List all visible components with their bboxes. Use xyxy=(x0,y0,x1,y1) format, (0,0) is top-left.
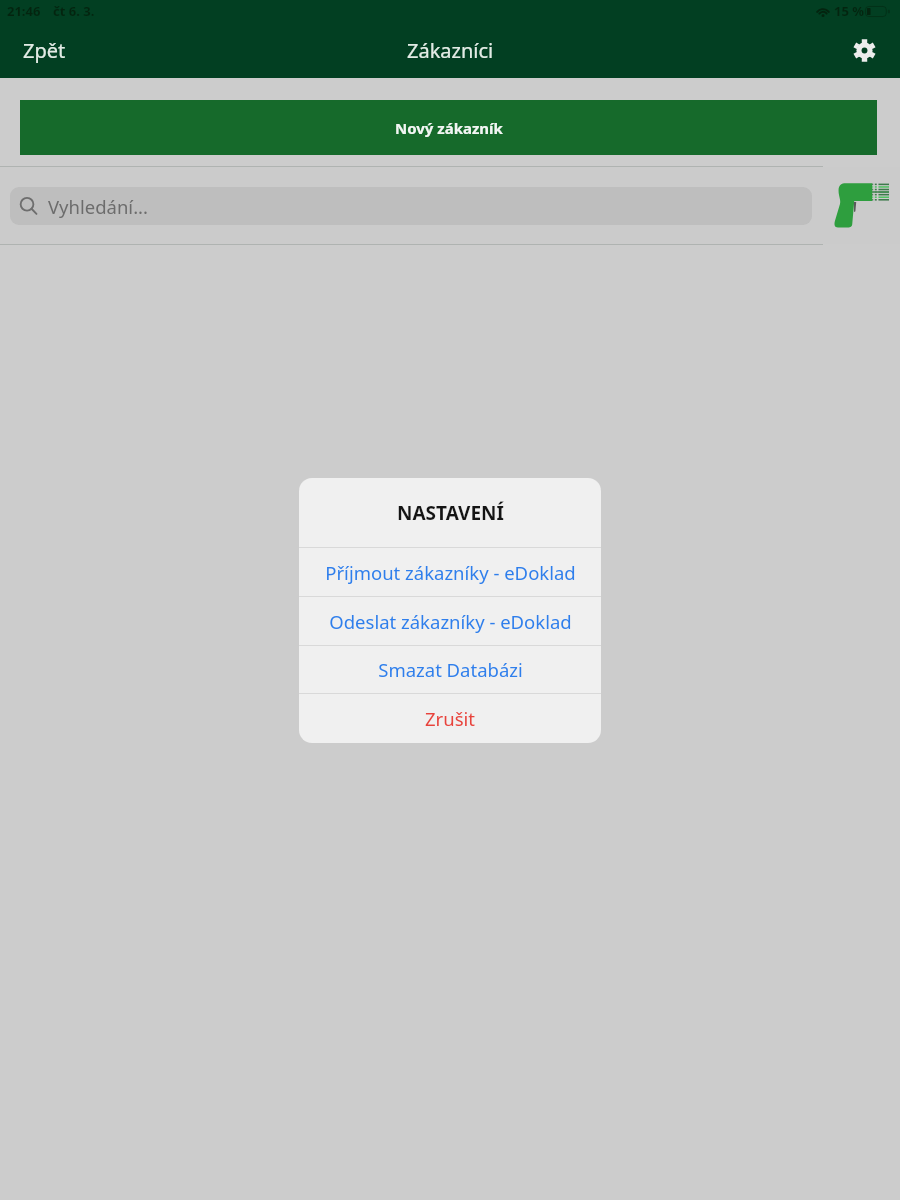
staticText: čt 6. 3. xyxy=(53,2,95,20)
button[interactable]: Scan barcode xyxy=(828,178,892,234)
button[interactable]: Vyhledání... xyxy=(10,187,812,225)
button[interactable]: Odeslat zákazníky - eDoklad xyxy=(299,597,601,645)
staticText: Smazat Databázi xyxy=(378,657,523,682)
button[interactable]: Příjmout zákazníky - eDoklad xyxy=(299,548,601,596)
button[interactable]: Nový zákazník xyxy=(20,100,877,155)
staticText: Odeslat zákazníky - eDoklad xyxy=(329,609,572,634)
staticText: Zákazníci xyxy=(407,37,494,64)
button[interactable]: Zrušit xyxy=(299,694,601,743)
staticText: 15 % xyxy=(834,2,864,20)
staticText: Zpět xyxy=(23,37,66,64)
button[interactable]: Settings xyxy=(840,26,888,74)
staticText: Nový zákazník xyxy=(395,118,503,138)
staticText: Příjmout zákazníky - eDoklad xyxy=(325,560,576,585)
staticText: 21:46 xyxy=(7,2,41,20)
staticText: Zrušit xyxy=(425,706,475,731)
button[interactable]: Zpět xyxy=(0,22,86,78)
staticText: Vyhledání... xyxy=(48,194,149,219)
staticText: NASTAVENÍ xyxy=(397,500,504,526)
button[interactable]: Smazat Databázi xyxy=(299,646,601,693)
